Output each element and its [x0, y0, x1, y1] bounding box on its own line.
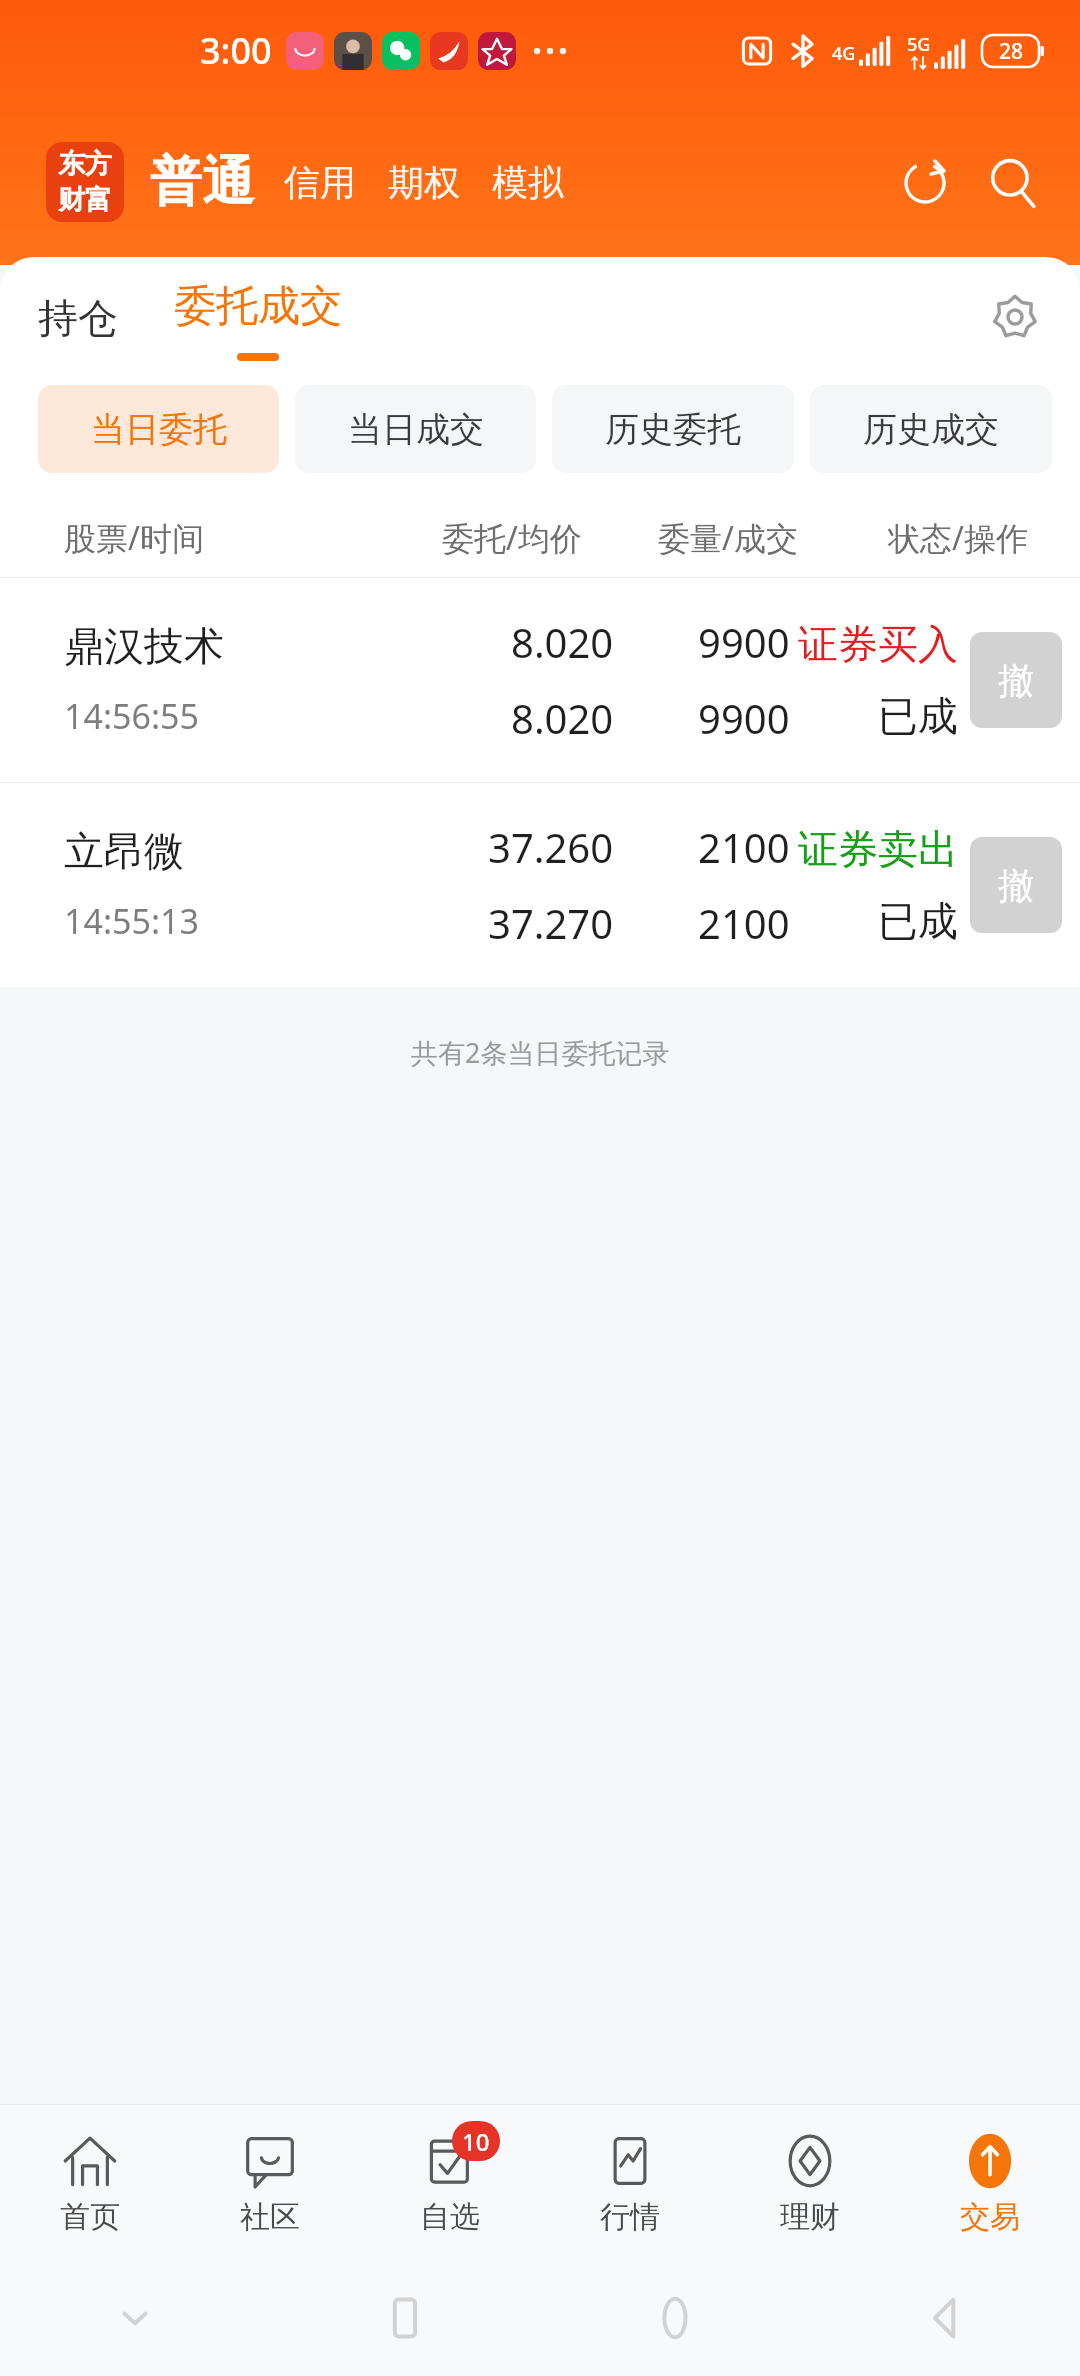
staticText: 3:00 [200, 26, 272, 75]
staticText: 证券买入 [798, 619, 958, 669]
staticText: 委量/成交 [658, 516, 798, 560]
staticText: 共有2条当日委托记录 [411, 1034, 670, 1071]
button[interactable]: 委托成交 [166, 274, 350, 339]
button[interactable]: 行情 [540, 2105, 720, 2260]
button[interactable]: 理财 [720, 2105, 900, 2260]
button[interactable]: 历史委托 [552, 385, 794, 473]
staticText: 普通 [150, 149, 254, 215]
staticText: 2100 [698, 820, 790, 874]
button[interactable]: 10 [360, 2105, 540, 2260]
staticText: 证券卖出 [798, 824, 958, 874]
button[interactable]: 撤 [970, 837, 1062, 933]
staticText: 28 [999, 37, 1024, 66]
staticText: 状态/操作 [888, 516, 1028, 560]
button[interactable]: 历史成交 [810, 385, 1052, 473]
staticText: 8.020 [511, 615, 614, 669]
button[interactable]: 期权 [386, 160, 462, 205]
button[interactable]: 撤 [970, 632, 1062, 728]
staticText: 鼎汉技术 [64, 621, 224, 671]
staticText: 首页 [60, 2198, 120, 2236]
staticText: 理财 [780, 2198, 840, 2236]
staticText: 8.020 [511, 691, 614, 745]
staticText: 期权 [388, 160, 460, 205]
staticText: 4G [832, 41, 856, 66]
staticText: 10 [462, 2125, 490, 2158]
button[interactable]: 社区 [180, 2105, 360, 2260]
staticText: 当日委托 [91, 408, 227, 451]
staticText: 自选 [420, 2198, 480, 2236]
button[interactable]: 模拟 [490, 160, 566, 205]
staticText: 历史成交 [863, 408, 999, 451]
button[interactable]: 东方财富 [46, 142, 124, 222]
button[interactable]: 当日成交 [295, 385, 536, 473]
staticText: 模拟 [492, 160, 564, 205]
button[interactable]: 鼎汉技术 [0, 578, 1080, 782]
button[interactable]: 持仓 [30, 283, 126, 353]
staticText: 14:55:13 [64, 898, 199, 944]
button[interactable]: 搜索 [980, 150, 1046, 216]
staticText: 5G [907, 32, 931, 57]
button[interactable]: 立昂微 [0, 783, 1080, 987]
staticText: 9900 [698, 615, 790, 669]
button[interactable]: 刷新 [892, 150, 958, 216]
button[interactable]: 首页 [0, 2105, 180, 2260]
staticText: 委托/均价 [442, 516, 582, 560]
button[interactable]: 普通 [150, 149, 254, 215]
staticText: 37.260 [488, 820, 614, 874]
button[interactable]: 当日委托 [38, 385, 279, 473]
button[interactable]: 交易 [900, 2105, 1080, 2260]
staticText: 37.270 [488, 896, 614, 950]
staticText: 交易 [960, 2198, 1020, 2236]
staticText: 当日成交 [348, 408, 484, 451]
staticText: 14:56:55 [64, 693, 199, 739]
staticText: 已成 [878, 896, 958, 946]
staticText: 立昂微 [64, 826, 184, 876]
staticText: 行情 [600, 2198, 660, 2236]
staticText: 信用 [284, 160, 356, 205]
staticText: 撤 [998, 658, 1034, 703]
staticText: 持仓 [38, 293, 118, 343]
staticText: 2100 [698, 896, 790, 950]
staticText: 历史委托 [605, 408, 741, 451]
button[interactable]: 信用 [282, 160, 358, 205]
staticText: 撤 [998, 863, 1034, 908]
staticText: 社区 [240, 2198, 300, 2236]
staticText: 已成 [878, 691, 958, 741]
button[interactable]: 设置 [980, 282, 1050, 352]
staticText: 委托成交 [174, 280, 342, 333]
staticText: 财富 [58, 183, 112, 217]
staticText: 9900 [698, 691, 790, 745]
staticText: 东方 [58, 147, 112, 181]
staticText: 股票/时间 [64, 516, 204, 560]
